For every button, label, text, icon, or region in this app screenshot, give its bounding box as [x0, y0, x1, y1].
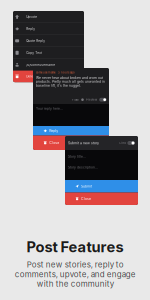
- staticText: Preview: [86, 98, 97, 101]
- staticText: Close: [81, 197, 91, 201]
- button[interactable]: Upvote: [13, 11, 84, 23]
- button[interactable]: /u/someusername: [13, 59, 84, 71]
- staticText: Reply: [49, 129, 58, 133]
- staticText: Story description...: [68, 165, 98, 169]
- staticText: someusername 3 hours ago: [36, 71, 75, 74]
- button[interactable]: Close: [33, 135, 109, 150]
- staticText: Post Features: [26, 238, 123, 256]
- staticText: Submit a new story: [68, 141, 99, 145]
- button[interactable]: Reply: [33, 126, 109, 135]
- button[interactable]: Copy Text: [13, 47, 84, 59]
- staticText: Delete: [26, 74, 36, 78]
- staticText: Reply: [26, 27, 35, 31]
- button[interactable]: Submit: [65, 180, 138, 192]
- staticText: Submit: [81, 184, 92, 188]
- button[interactable]: Close: [65, 192, 138, 205]
- staticText: Flash: [72, 98, 79, 101]
- button[interactable]: Toggle: [127, 141, 135, 145]
- staticText: Post new stories, reply to comments, upv…: [14, 260, 135, 289]
- staticText: We never hear about broken and worn out …: [36, 76, 105, 87]
- button[interactable]: Reply: [13, 23, 84, 35]
- button[interactable]: Delete: [13, 71, 84, 82]
- button[interactable]: Quote Reply: [13, 35, 84, 47]
- staticText: Story title...: [68, 155, 86, 158]
- staticText: Close: [49, 141, 59, 145]
- button[interactable]: Toggle: [99, 98, 107, 102]
- staticText: Your reply here...: [36, 107, 63, 110]
- staticText: Link: [119, 141, 125, 145]
- staticText: Quote Reply: [26, 39, 45, 43]
- staticText: Copy Text: [26, 51, 42, 55]
- staticText: Upvote: [26, 15, 37, 19]
- staticText: /u/someusername: [26, 63, 55, 67]
